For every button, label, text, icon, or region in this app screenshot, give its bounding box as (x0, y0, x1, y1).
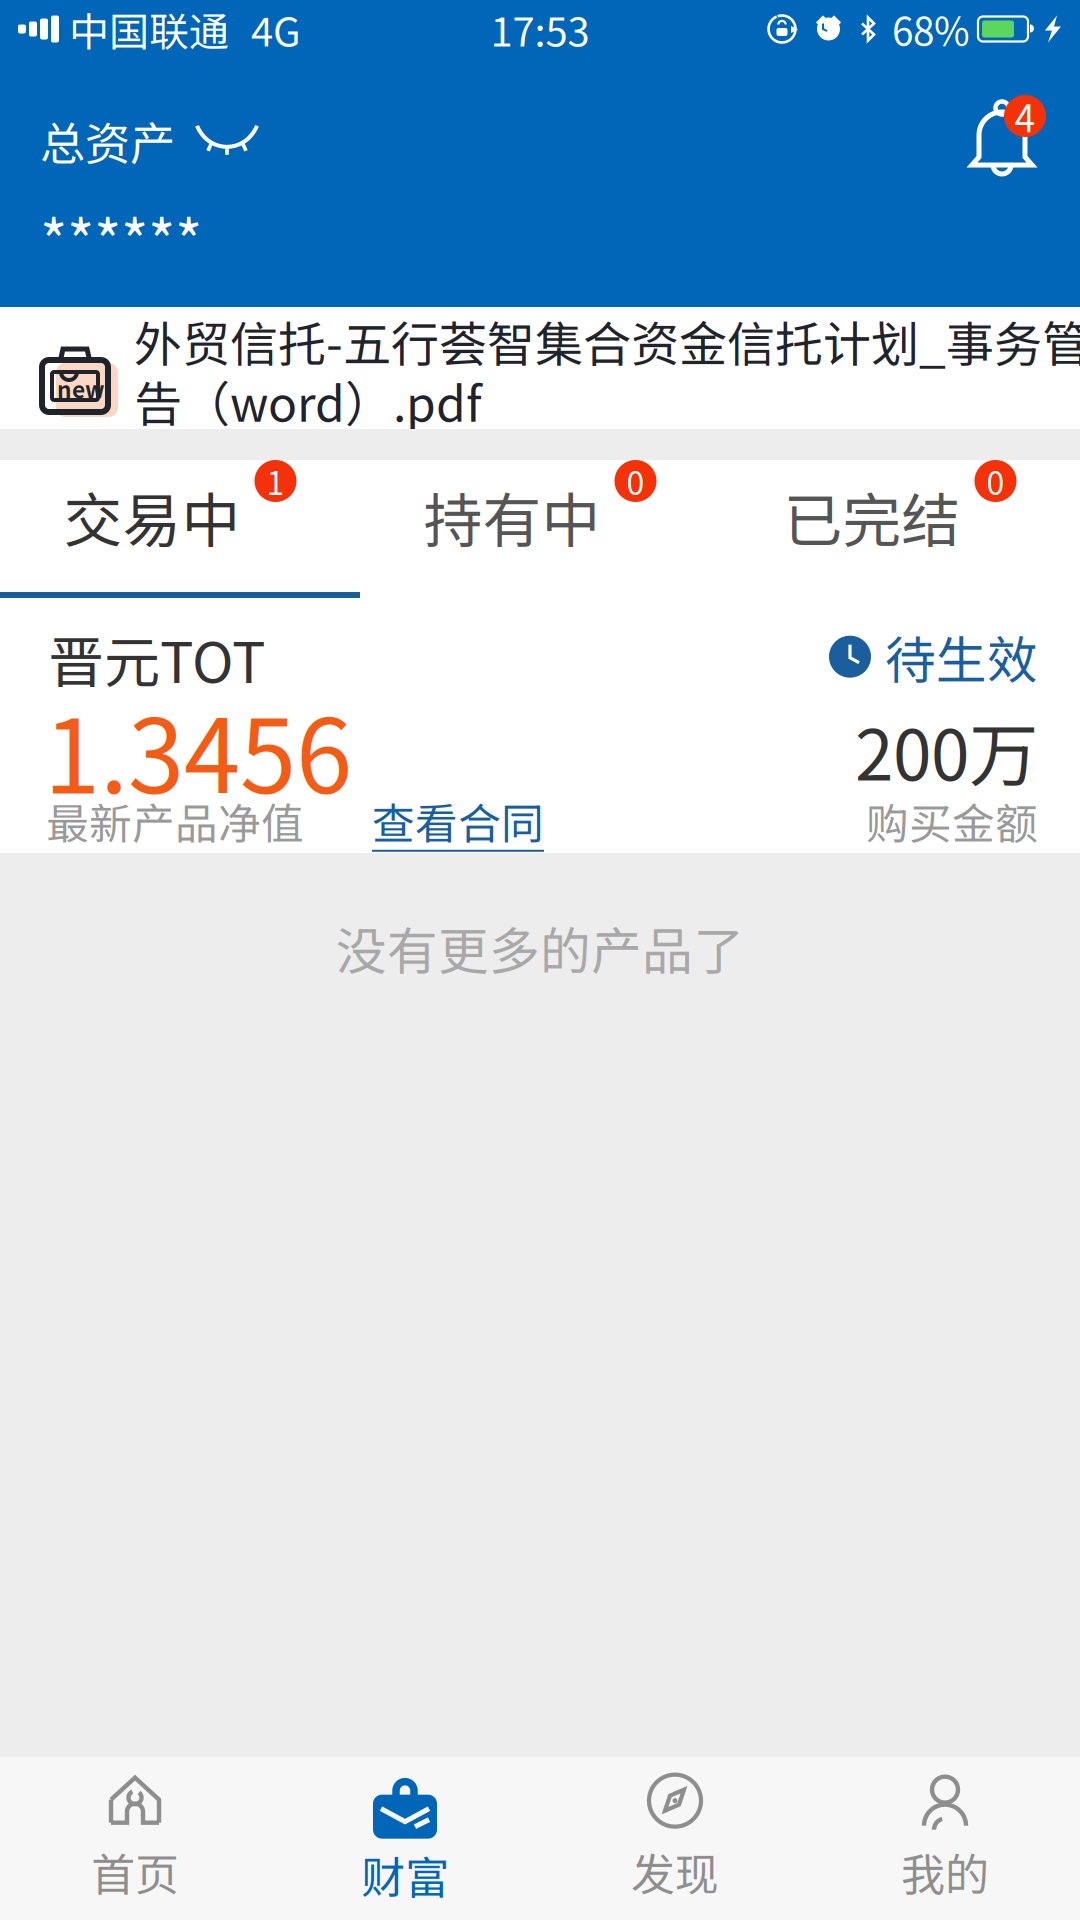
staticText: 查看合同 (372, 790, 544, 852)
staticText: 财富 (361, 1843, 449, 1906)
staticText: 1 (266, 458, 284, 504)
staticText: 1.3456 (44, 676, 352, 823)
button[interactable]: 交易中 (0, 460, 360, 598)
staticText: 首页 (91, 1840, 179, 1903)
staticText: 0 (626, 458, 644, 504)
button[interactable]: 晋元TOT (0, 598, 1080, 853)
staticText: 我的 (901, 1840, 989, 1903)
staticText: 4G (251, 0, 301, 58)
staticText: new (57, 372, 105, 405)
staticText: 发现 (631, 1840, 719, 1903)
staticText: 中国联通 (69, 0, 229, 58)
staticText: 最新产品净值 (46, 790, 304, 852)
staticText: 没有更多的产品了 (336, 911, 744, 984)
staticText: 购买金额 (866, 790, 1038, 852)
staticText: 告（word）.pdf (134, 366, 482, 435)
staticText: 68% (892, 1, 970, 57)
staticText: 已完结 (783, 474, 960, 559)
button[interactable]: 查看合同 (372, 790, 544, 852)
staticText: 200万 (855, 700, 1038, 800)
button[interactable]: new (0, 307, 1080, 429)
button[interactable]: 首页 (0, 1757, 270, 1920)
staticText: 交易中 (63, 474, 240, 559)
button[interactable]: 总资产 (40, 108, 259, 174)
staticText: ****** (40, 196, 202, 281)
staticText: 17:53 (490, 0, 589, 58)
staticText: 待生效 (885, 620, 1038, 693)
staticText: 总资产 (40, 108, 175, 174)
button[interactable]: 持有中 (360, 460, 720, 598)
staticText: 持有中 (423, 474, 600, 559)
button[interactable]: 已完结 (720, 460, 1080, 598)
button[interactable]: 我的 (810, 1757, 1080, 1920)
button[interactable]: 通知 (964, 100, 1040, 176)
staticText: 晋元TOT (48, 618, 266, 699)
button[interactable]: 发现 (540, 1757, 810, 1920)
staticText: 4 (1014, 89, 1035, 143)
staticText: 0 (986, 458, 1004, 504)
staticText: 外贸信托-五行荟智集合资金信托计划_事务管理报 (134, 306, 1080, 375)
button[interactable]: 财富 (270, 1757, 540, 1920)
